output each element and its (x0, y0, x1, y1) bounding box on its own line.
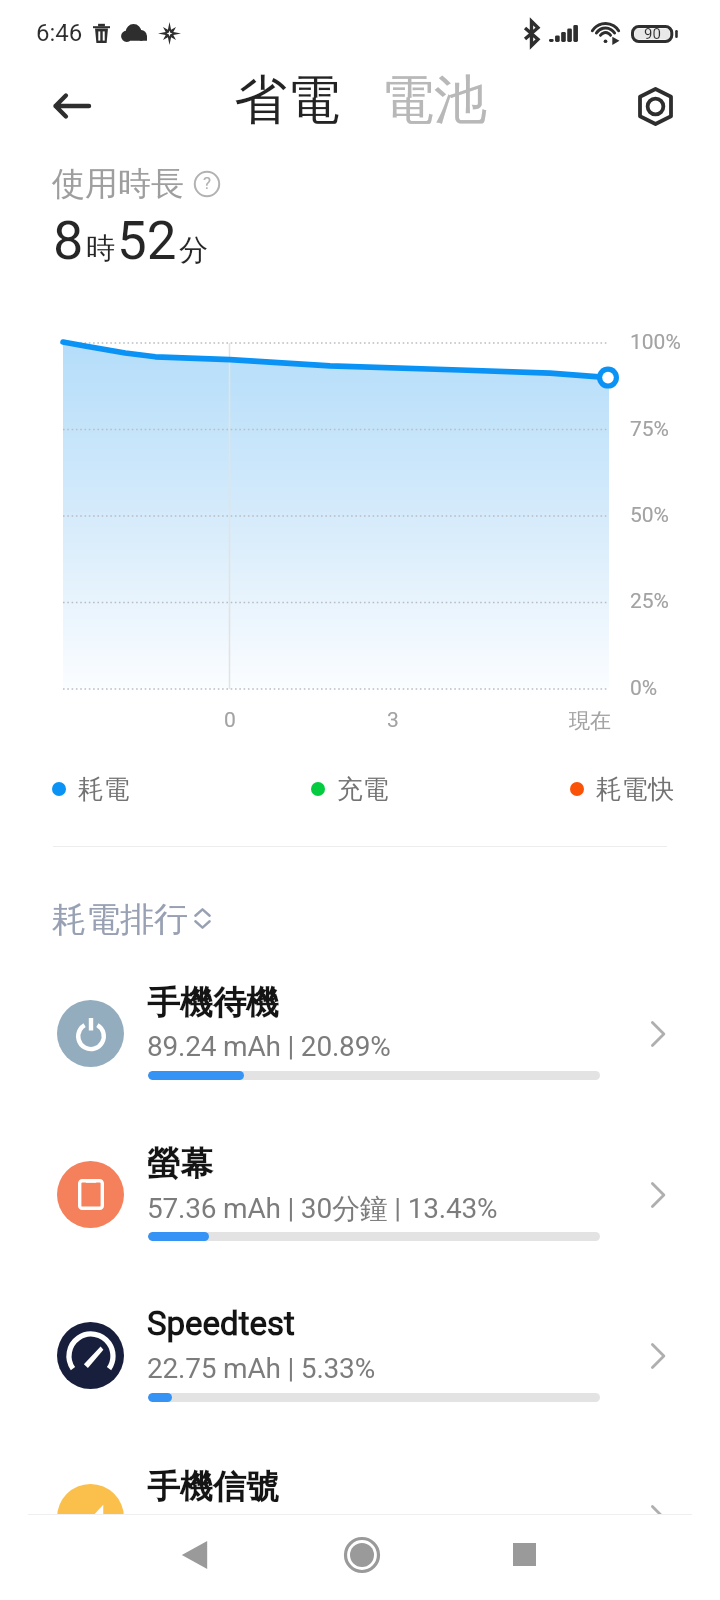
button[interactable]: Settings (626, 77, 684, 135)
staticText: 電池 (381, 67, 487, 134)
button[interactable]: Back (132, 1512, 256, 1597)
staticText: 0 (224, 708, 236, 733)
button[interactable]: Speedtest (0, 1274, 720, 1432)
staticText: 50% (630, 503, 669, 528)
button[interactable]: 耗電排行 (52, 898, 211, 938)
staticText: 22.75 mAh | 5.33% (147, 1352, 375, 1385)
staticText: 分 (179, 232, 208, 269)
staticText: ? (203, 173, 212, 193)
staticText: 75% (630, 417, 669, 442)
button[interactable]: 手機待機 (0, 952, 720, 1110)
staticText: 時 (86, 230, 115, 267)
button[interactable]: 螢幕 (0, 1113, 720, 1271)
staticText: 89.24 mAh | 20.89% (147, 1030, 391, 1063)
staticText: 90 (644, 25, 661, 43)
staticText: 使用時長 (52, 163, 184, 205)
staticText: 耗電 (78, 773, 130, 805)
staticText: 螢幕 (147, 1143, 213, 1185)
staticText: 57.36 mAh | 30分鐘 | 13.43% (147, 1191, 498, 1226)
staticText: 0% (630, 676, 658, 701)
staticText: 3 (387, 708, 399, 733)
staticText: 52 (117, 210, 177, 272)
staticText: 手機待機 (147, 982, 279, 1024)
staticText: 25% (630, 589, 669, 614)
staticText: 100% (630, 330, 681, 355)
button[interactable]: Home (300, 1512, 424, 1597)
button[interactable]: 手機信號 (0, 1436, 720, 1594)
staticText: 省電 (234, 67, 340, 134)
staticText: 充電 (337, 773, 389, 805)
staticText: 耗電排行 (52, 898, 188, 938)
staticText: 耗電快 (596, 773, 674, 805)
staticText: 手機信號 (147, 1466, 279, 1508)
staticText: 現在 (569, 708, 611, 734)
staticText: Speedtest (147, 1304, 295, 1343)
button[interactable]: Back (40, 74, 104, 138)
staticText: 6:46 (36, 19, 83, 47)
staticText: 8 (53, 209, 84, 272)
button[interactable]: Recents (462, 1512, 586, 1597)
